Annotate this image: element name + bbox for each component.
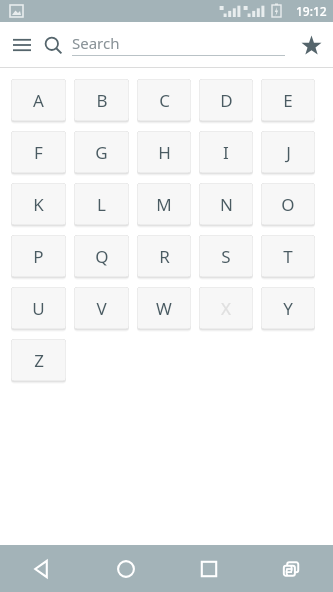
staticText: H <box>158 141 171 164</box>
button[interactable]: Home <box>84 545 167 592</box>
staticText: Search <box>72 33 120 53</box>
staticText: F <box>34 141 43 164</box>
staticText: W <box>156 297 172 320</box>
button[interactable]: H <box>137 131 191 173</box>
button[interactable]: F <box>11 131 66 173</box>
staticText: P <box>33 245 44 268</box>
button[interactable]: Search <box>44 22 285 67</box>
staticText: I <box>223 141 229 164</box>
button[interactable]: Open navigation menu <box>0 23 44 67</box>
button[interactable]: E <box>261 79 315 121</box>
button[interactable]: S <box>199 235 253 277</box>
staticText: N <box>220 193 233 216</box>
staticText: T <box>283 245 293 268</box>
button[interactable]: Y <box>261 287 315 329</box>
button[interactable]: D <box>199 79 253 121</box>
staticText: D <box>220 89 233 112</box>
staticText: V <box>96 297 107 320</box>
button[interactable]: T <box>261 235 315 277</box>
button[interactable]: L <box>74 183 129 225</box>
button[interactable]: U <box>11 287 66 329</box>
staticText: B <box>96 89 108 112</box>
button[interactable]: I <box>199 131 253 173</box>
button[interactable]: G <box>74 131 129 173</box>
button[interactable]: Recent apps <box>167 545 250 592</box>
button[interactable]: A <box>11 79 66 121</box>
staticText: A <box>33 89 44 112</box>
button[interactable]: Back <box>0 545 84 592</box>
staticText: U <box>32 297 45 320</box>
button[interactable]: J <box>261 131 315 173</box>
staticText: C <box>159 89 170 112</box>
button[interactable]: V <box>74 287 129 329</box>
staticText: L <box>97 193 106 216</box>
button[interactable]: N <box>199 183 253 225</box>
staticText: M <box>156 193 172 216</box>
button[interactable]: O <box>261 183 315 225</box>
staticText: G <box>95 141 108 164</box>
button: X <box>199 287 253 329</box>
staticText: O <box>281 193 295 216</box>
staticText: J <box>286 141 291 164</box>
staticText: Y <box>283 297 293 320</box>
button[interactable]: P <box>11 235 66 277</box>
button[interactable]: Favorites <box>289 23 333 67</box>
button[interactable]: C <box>137 79 191 121</box>
button[interactable]: Z <box>11 339 66 381</box>
button[interactable]: M <box>137 183 191 225</box>
button[interactable]: W <box>137 287 191 329</box>
button[interactable]: R <box>137 235 191 277</box>
staticText: E <box>283 89 293 112</box>
staticText: Z <box>34 349 44 372</box>
staticText: 19:12 <box>296 3 327 19</box>
button[interactable]: B <box>74 79 129 121</box>
button[interactable]: Q <box>74 235 129 277</box>
staticText: X <box>221 297 231 320</box>
staticText: R <box>159 245 170 268</box>
staticText: Q <box>95 245 109 268</box>
staticText: S <box>221 245 231 268</box>
staticText: K <box>33 193 44 216</box>
button[interactable]: Switch apps <box>250 545 333 592</box>
button[interactable]: K <box>11 183 66 225</box>
